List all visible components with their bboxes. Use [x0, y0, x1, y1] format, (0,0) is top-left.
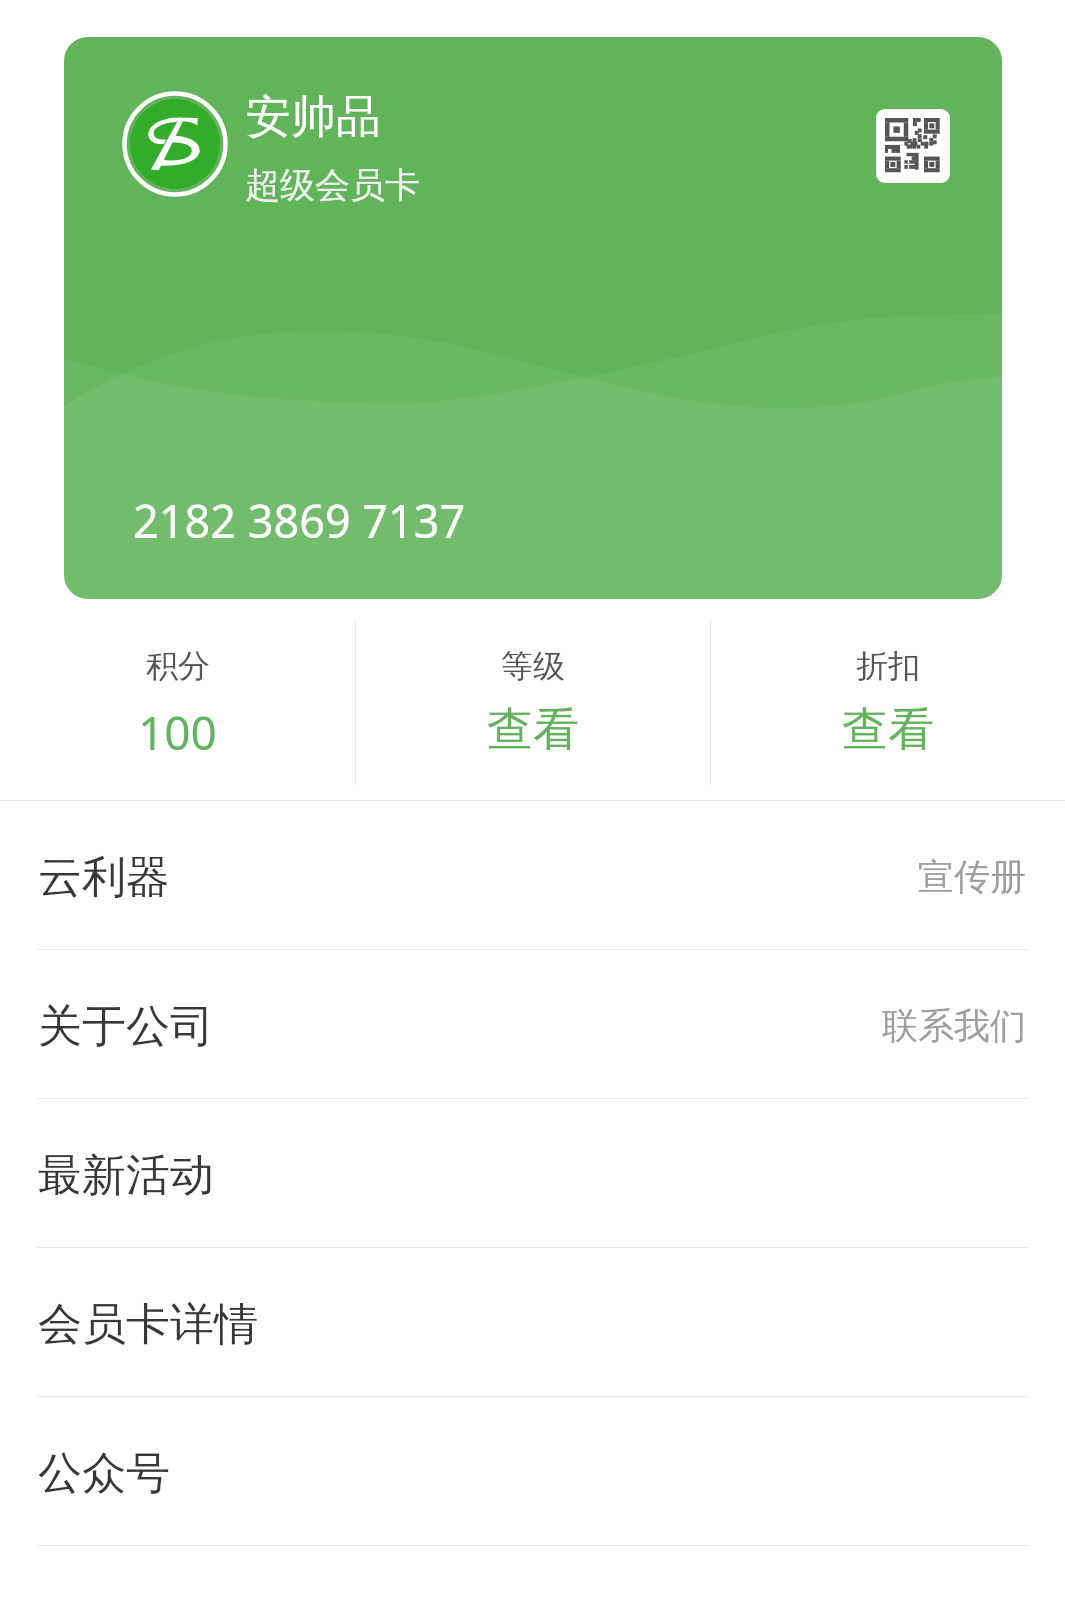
staticText: 关于公司 [38, 999, 214, 1054]
button[interactable]: 等级 [355, 599, 710, 800]
button[interactable]: 云利器 [0, 801, 1065, 950]
button[interactable]: 公众号 [0, 1397, 1065, 1546]
staticText: 积分 [146, 646, 210, 686]
staticText: 等级 [501, 646, 565, 686]
button[interactable]: 关于公司 [0, 950, 1065, 1099]
staticText: 最新活动 [38, 1148, 214, 1203]
staticText: 折扣 [856, 646, 920, 686]
staticText: 超级会员卡 [245, 163, 420, 207]
button[interactable]: 最新活动 [0, 1099, 1065, 1248]
staticText: 会员卡详情 [38, 1297, 258, 1352]
staticText: 云利器 [38, 850, 170, 905]
button[interactable]: Show QR code [876, 109, 950, 183]
button[interactable]: 安帅品 [64, 37, 1002, 599]
staticText: 查看 [487, 701, 579, 759]
staticText: 宣传册 [918, 854, 1026, 899]
staticText: 联系我们 [882, 1003, 1026, 1048]
staticText: 2182 3869 7137 [133, 490, 466, 551]
staticText: 查看 [842, 701, 934, 759]
staticText: 公众号 [38, 1446, 170, 1501]
staticText: 安帅品 [246, 89, 381, 146]
button[interactable]: 会员卡详情 [0, 1248, 1065, 1397]
button[interactable]: 折扣 [710, 599, 1065, 800]
button[interactable]: 积分 [0, 599, 355, 800]
staticText: 100 [138, 701, 217, 764]
